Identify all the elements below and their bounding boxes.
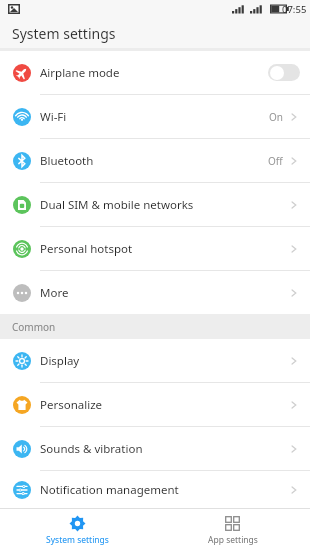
staticText: On — [269, 110, 283, 124]
button[interactable]: App settings — [155, 509, 310, 551]
button[interactable]: Bluetooth — [0, 139, 310, 183]
staticText: Off — [268, 154, 283, 168]
staticText: Bluetooth — [40, 153, 268, 169]
button[interactable]: Dual SIM & mobile networks — [0, 183, 310, 227]
button[interactable]: Personal hotspot — [0, 227, 310, 271]
staticText: Personalize — [40, 397, 288, 413]
button[interactable]: Sounds & vibration — [0, 427, 310, 471]
staticText: System settings — [12, 24, 116, 43]
button[interactable]: More — [0, 271, 310, 314]
button[interactable]: System settings — [0, 509, 155, 551]
staticText: 07:55 — [282, 3, 307, 16]
button[interactable]: Airplane mode — [0, 51, 310, 95]
staticText: Personal hotspot — [40, 241, 288, 257]
staticText: Common — [12, 320, 56, 334]
button[interactable]: Notification management — [0, 471, 310, 508]
staticText: Display — [40, 353, 288, 369]
staticText: Dual SIM & mobile networks — [40, 197, 288, 213]
staticText: Airplane mode — [40, 65, 268, 81]
staticText: App settings — [208, 534, 258, 546]
button[interactable]: Airplane mode toggle — [268, 64, 300, 81]
staticText: Sounds & vibration — [40, 441, 288, 457]
staticText: Wi-Fi — [40, 109, 269, 125]
button[interactable]: Personalize — [0, 383, 310, 427]
staticText: More — [40, 285, 288, 301]
button[interactable]: Display — [0, 339, 310, 383]
staticText: Notification management — [40, 482, 288, 498]
staticText: System settings — [46, 534, 109, 546]
button[interactable]: Wi-Fi — [0, 95, 310, 139]
